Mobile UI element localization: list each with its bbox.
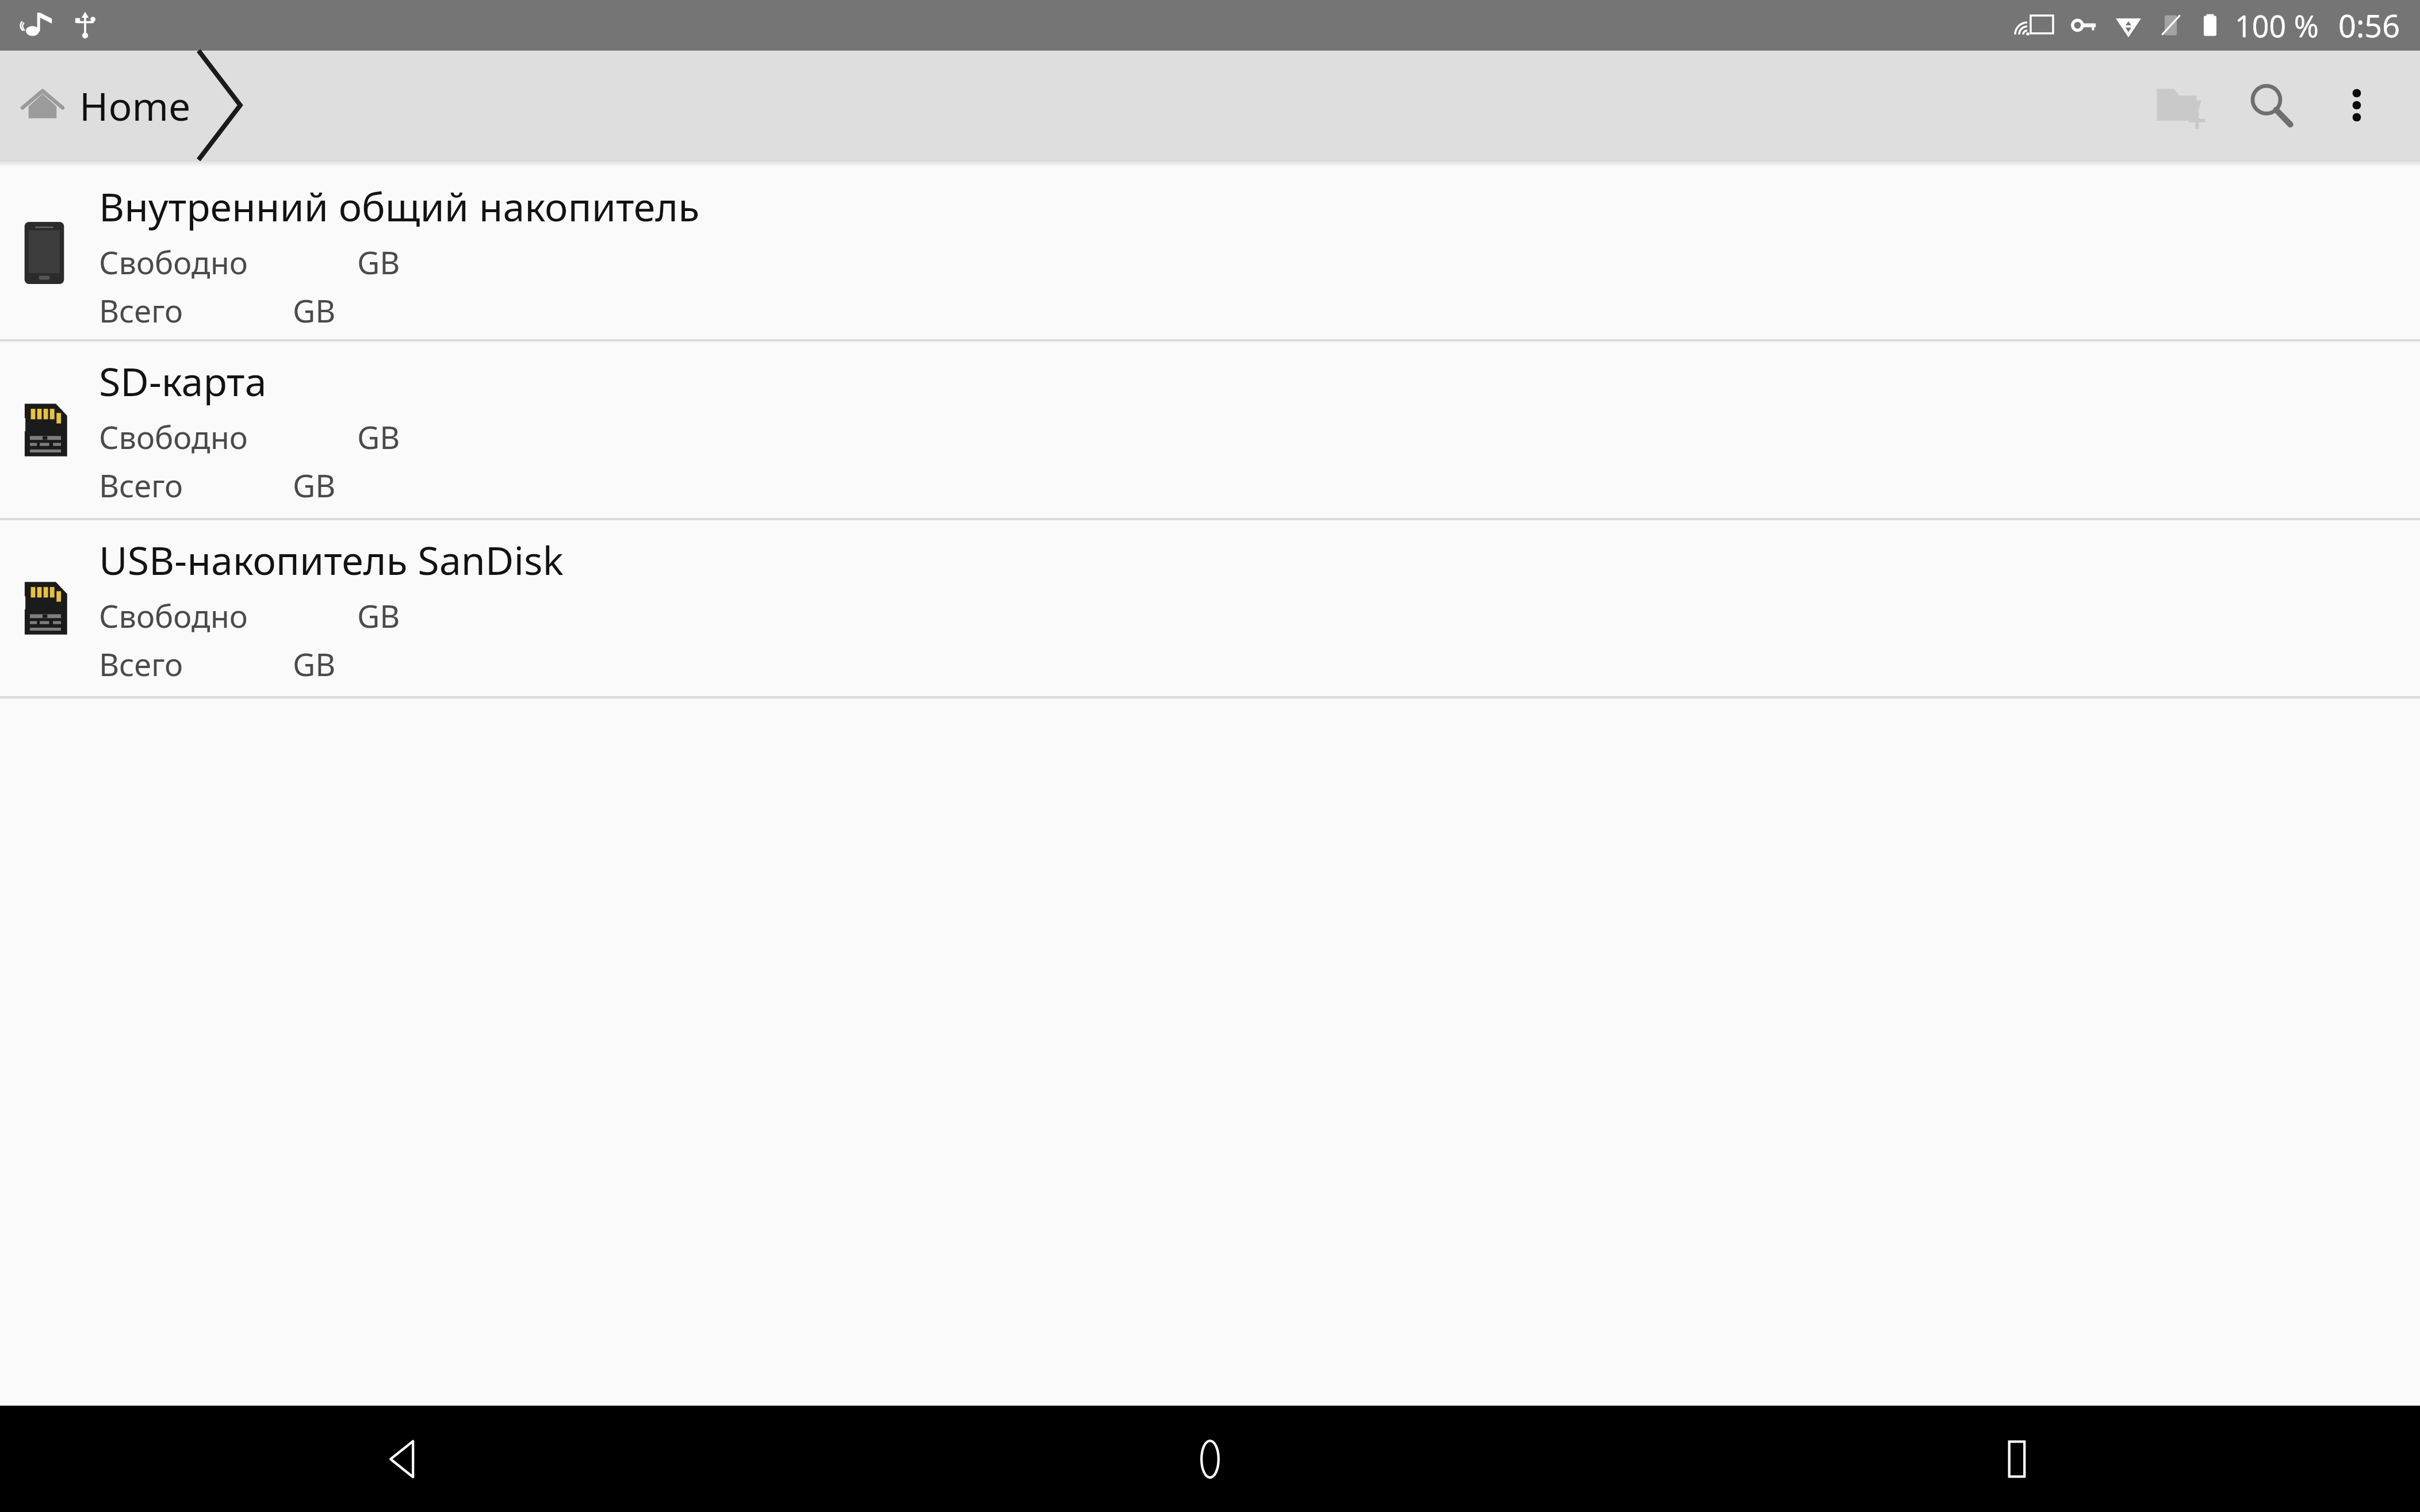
staticText: Всего bbox=[99, 289, 183, 332]
staticText: Внутренний общий накопитель bbox=[99, 179, 700, 233]
button[interactable]: Внутренний общий накопитель bbox=[0, 167, 2420, 339]
button[interactable]: Search bbox=[2228, 62, 2314, 148]
staticText: GB bbox=[293, 464, 336, 506]
staticText: Home bbox=[79, 79, 191, 132]
staticText: GB bbox=[357, 241, 400, 283]
staticText: GB bbox=[293, 643, 336, 685]
button[interactable]: SD-карта bbox=[0, 341, 2420, 518]
staticText: GB bbox=[357, 594, 400, 637]
staticText: 0:56 bbox=[2338, 4, 2400, 47]
staticText: 100 % bbox=[2235, 5, 2319, 46]
staticText: GB bbox=[357, 416, 400, 458]
staticText: SD-карта bbox=[99, 354, 267, 408]
button[interactable]: More options bbox=[2316, 65, 2397, 145]
staticText: Всего bbox=[99, 643, 183, 685]
button[interactable]: Recent apps bbox=[1613, 1406, 2420, 1512]
button[interactable]: Back bbox=[0, 1406, 806, 1512]
staticText: Свободно bbox=[99, 594, 248, 637]
button[interactable]: Home bbox=[806, 1406, 1613, 1512]
staticText: GB bbox=[293, 289, 336, 332]
button[interactable]: Home bbox=[0, 51, 277, 160]
staticText: Свободно bbox=[99, 416, 248, 458]
button[interactable]: New folder bbox=[2136, 62, 2222, 148]
staticText: Всего bbox=[99, 464, 183, 506]
staticText: Свободно bbox=[99, 241, 248, 283]
button[interactable]: USB-накопитель SanDisk bbox=[0, 520, 2420, 696]
staticText: USB-накопитель SanDisk bbox=[99, 533, 564, 586]
